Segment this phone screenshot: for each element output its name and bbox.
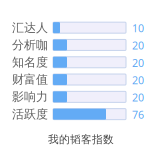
button[interactable]: 分析咖 — [12, 36, 160, 54]
staticText: 影响力 — [12, 89, 48, 104]
staticText: 20 — [132, 56, 144, 70]
staticText: 20 — [132, 38, 144, 53]
button[interactable]: 活跃度 — [12, 105, 160, 123]
staticText: 10 — [132, 21, 144, 35]
button[interactable]: 影响力 — [12, 88, 160, 105]
button[interactable]: 财富值 — [12, 71, 160, 88]
staticText: 20 — [132, 73, 144, 87]
button[interactable]: 汇达人 — [12, 19, 160, 36]
staticText: 20 — [132, 90, 144, 104]
button[interactable]: 知名度 — [12, 54, 160, 71]
staticText: 活跃度 — [12, 107, 48, 121]
staticText: 财富值 — [12, 72, 48, 87]
staticText: 76 — [132, 108, 144, 122]
staticText: 汇达人 — [12, 20, 48, 35]
staticText: 知名度 — [12, 55, 48, 70]
staticText: 我的韬客指数 — [48, 133, 114, 146]
staticText: 分析咖 — [12, 38, 48, 52]
